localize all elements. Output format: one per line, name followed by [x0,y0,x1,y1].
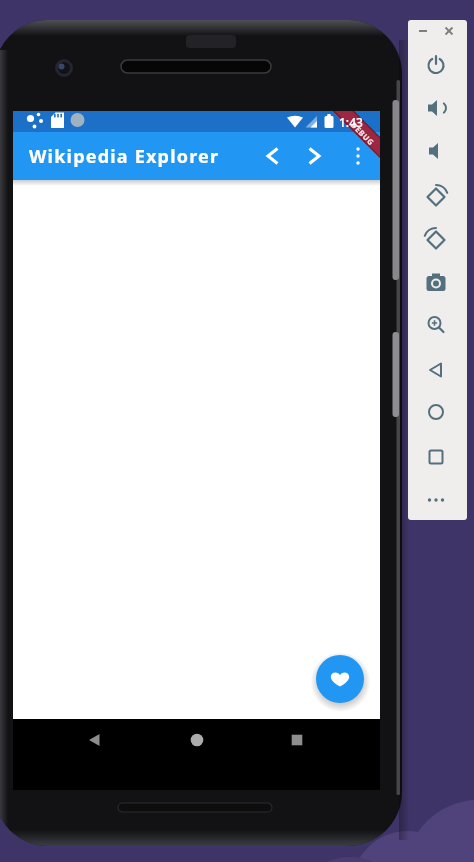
button[interactable] [408,352,464,388]
button[interactable] [408,47,464,83]
button[interactable] [408,265,464,301]
button[interactable] [408,307,464,343]
staticText: Wikipedia Explorer [29,144,220,169]
button[interactable] [411,21,435,41]
staticText: DEBUG [349,120,376,148]
button[interactable] [408,482,464,518]
button[interactable] [408,394,464,430]
button[interactable] [316,655,364,703]
staticText: 1:43 [339,114,363,130]
button[interactable] [408,179,464,215]
button[interactable] [253,132,293,180]
button[interactable] [74,716,114,764]
button[interactable] [408,90,464,126]
button[interactable] [408,133,464,169]
button[interactable] [437,21,461,41]
button[interactable] [408,439,464,475]
button[interactable] [408,222,464,258]
button[interactable] [338,132,378,180]
button[interactable] [177,716,217,764]
button[interactable] [294,132,334,180]
button[interactable] [277,716,317,764]
